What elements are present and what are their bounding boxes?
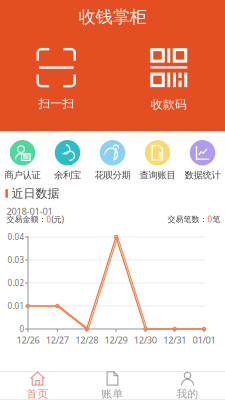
button[interactable]: 商户认证 — [0, 131, 45, 182]
button[interactable]: 扫一扫 — [0, 49, 112, 111]
button[interactable]: 收款码 — [112, 48, 225, 112]
staticText: 收款码 — [151, 97, 187, 112]
button[interactable]: 花呗分期 — [90, 131, 135, 182]
staticText: 近日数据 — [11, 186, 59, 201]
staticText: 我的 — [176, 387, 198, 400]
staticText: 12/26 — [16, 334, 39, 346]
staticText: 0.01 — [7, 301, 24, 311]
staticText: 0.02 — [7, 278, 24, 288]
staticText: 0 — [19, 324, 24, 334]
staticText: 账单 — [101, 387, 123, 400]
staticText: 收钱掌柜 — [78, 6, 146, 28]
staticText: 12/30 — [134, 334, 157, 346]
button[interactable]: 余利宝 — [45, 131, 90, 182]
staticText: 交易金额： — [6, 214, 46, 224]
staticText: 12/27 — [46, 334, 69, 346]
staticText: 查询账目 — [139, 169, 175, 181]
staticText: 商户认证 — [4, 169, 40, 181]
staticText: 首页 — [26, 387, 48, 400]
staticText: 12/31 — [163, 334, 186, 346]
button[interactable]: 查询账目 — [135, 131, 180, 182]
staticText: 笔 — [212, 214, 220, 224]
staticText: (元) — [51, 214, 63, 225]
staticText: 01/01 — [192, 334, 215, 346]
button[interactable]: 账单 — [75, 371, 150, 399]
button[interactable]: 首页 — [0, 371, 75, 399]
staticText: 数据统计 — [184, 169, 220, 181]
staticText: 余利宝 — [54, 169, 81, 181]
staticText: 花呗分期 — [94, 169, 130, 181]
staticText: 0.03 — [7, 255, 24, 265]
staticText: 0 — [46, 214, 51, 225]
button[interactable]: 数据统计 — [180, 131, 225, 182]
staticText: 2018-01-01 — [6, 205, 52, 217]
staticText: 0.04 — [7, 232, 24, 242]
button[interactable]: 我的 — [150, 371, 225, 399]
staticText: 12/29 — [104, 334, 127, 346]
staticText: 交易笔数： — [167, 214, 207, 224]
staticText: 0 — [207, 214, 212, 225]
staticText: 扫一扫 — [38, 96, 74, 111]
staticText: 12/28 — [75, 334, 98, 346]
